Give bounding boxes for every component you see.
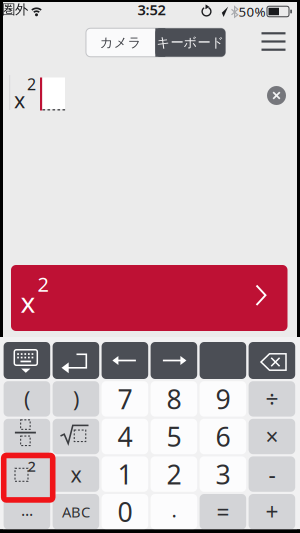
button[interactable]: 2	[151, 456, 197, 492]
staticText: ÷	[265, 384, 278, 414]
button[interactable]: x	[53, 456, 99, 492]
button[interactable]: ÷	[249, 381, 295, 417]
button[interactable]: ×	[249, 419, 295, 454]
button[interactable]: 削除	[249, 342, 295, 379]
button[interactable]: 9	[200, 381, 246, 417]
staticText: -	[268, 459, 275, 489]
staticText: 圏外	[2, 1, 28, 18]
button[interactable]: 改行	[53, 342, 99, 379]
button[interactable]: 右へ移動	[151, 342, 197, 379]
staticText: 3	[215, 456, 230, 492]
staticText: 5	[166, 419, 181, 454]
staticText: .	[171, 496, 176, 523]
staticText: 3:52	[137, 0, 165, 19]
button[interactable]: 6	[200, 419, 246, 454]
staticText: )	[73, 385, 79, 413]
staticText: キーボード	[156, 34, 224, 51]
button[interactable]: .	[151, 494, 197, 529]
button[interactable]: メニュー	[261, 32, 285, 51]
staticText: 2	[27, 73, 36, 95]
staticText: 8	[166, 381, 181, 417]
staticText: 50%	[238, 3, 265, 20]
staticText: x	[20, 283, 35, 321]
button[interactable]: =	[200, 494, 246, 529]
button[interactable]: +	[249, 494, 295, 529]
staticText: 7	[117, 381, 132, 417]
staticText: 4	[117, 419, 132, 454]
button[interactable]: 分数	[4, 419, 50, 454]
staticText: x	[14, 86, 25, 114]
staticText: 0	[117, 494, 132, 529]
button[interactable]: )	[53, 381, 99, 417]
staticText: (	[24, 385, 30, 413]
button[interactable]: 5	[151, 419, 197, 454]
button[interactable]: 8	[151, 381, 197, 417]
button[interactable]: 左へ移動	[102, 342, 148, 379]
staticText: 2	[37, 271, 48, 297]
button[interactable]: ABC	[53, 494, 99, 529]
staticText: +	[265, 497, 278, 527]
button[interactable]: 7	[102, 381, 148, 417]
staticText: カメラ	[100, 34, 142, 51]
staticText: 6	[215, 419, 230, 454]
button[interactable]: ...	[4, 494, 50, 529]
staticText: 2	[166, 456, 181, 492]
staticText: ABC	[62, 502, 90, 521]
button[interactable]: キーボード	[155, 28, 225, 57]
button[interactable]: x	[11, 265, 287, 331]
staticText: ×	[265, 421, 278, 451]
staticText: x	[70, 460, 81, 488]
staticText: 1	[117, 456, 132, 492]
button[interactable]: 平方根	[53, 419, 99, 454]
staticText: =	[216, 497, 229, 527]
staticText: ...	[21, 499, 33, 520]
button[interactable]: 二乗	[4, 455, 53, 500]
button[interactable]: 0	[102, 494, 148, 529]
button[interactable]: -	[249, 456, 295, 492]
button[interactable]: (	[4, 381, 50, 417]
button[interactable]: クリア	[267, 86, 286, 105]
button[interactable]: キーボードを隠す	[4, 342, 50, 379]
staticText: 2	[27, 456, 35, 476]
button[interactable]: 4	[102, 419, 148, 454]
button[interactable]: スペース	[200, 342, 246, 379]
staticText: 9	[215, 381, 230, 417]
button[interactable]: 3	[200, 456, 246, 492]
button[interactable]: 1	[102, 456, 148, 492]
button[interactable]: カメラ	[86, 28, 155, 57]
